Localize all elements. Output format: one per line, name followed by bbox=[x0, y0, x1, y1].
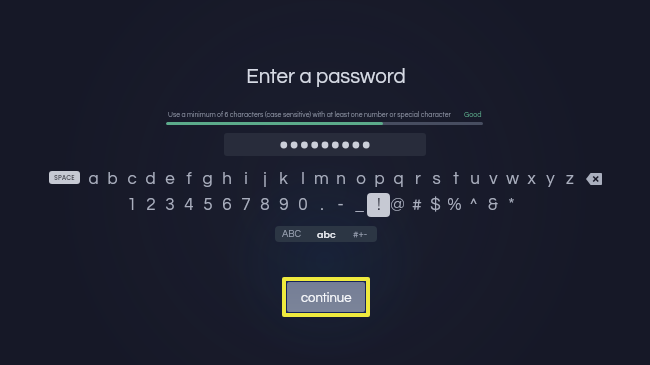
button[interactable]: i bbox=[234, 167, 257, 191]
button[interactable]: . bbox=[310, 193, 333, 217]
button[interactable]: b bbox=[101, 167, 124, 191]
button[interactable]: m bbox=[310, 167, 333, 191]
staticText: f bbox=[186, 170, 192, 188]
button[interactable]: - bbox=[329, 193, 352, 217]
button[interactable]: $ bbox=[424, 193, 447, 217]
button[interactable]: g bbox=[196, 167, 219, 191]
button[interactable]: SPACE bbox=[49, 171, 80, 184]
button[interactable]: n bbox=[329, 167, 352, 191]
button[interactable]: continue bbox=[282, 277, 370, 317]
button[interactable]: j bbox=[253, 167, 276, 191]
button[interactable]: 2 bbox=[139, 193, 162, 217]
button[interactable]: a bbox=[82, 167, 105, 191]
button[interactable]: s bbox=[425, 167, 448, 191]
staticText: - bbox=[337, 196, 344, 214]
button[interactable]: # bbox=[405, 193, 428, 217]
staticText: SPACE bbox=[54, 173, 75, 182]
button[interactable]: abc bbox=[309, 226, 343, 242]
staticText: 3 bbox=[165, 196, 175, 214]
button[interactable]: w bbox=[501, 167, 524, 191]
button[interactable]: q bbox=[387, 167, 410, 191]
staticText: k bbox=[279, 170, 288, 188]
button[interactable]: ! bbox=[367, 193, 390, 217]
button[interactable]: 8 bbox=[253, 193, 276, 217]
staticText: % bbox=[447, 196, 462, 214]
staticText: continue bbox=[301, 291, 352, 304]
button[interactable]: p bbox=[368, 167, 391, 191]
button[interactable]: o bbox=[349, 167, 372, 191]
staticText: u bbox=[470, 170, 480, 188]
staticText: Good bbox=[464, 111, 482, 118]
button[interactable]: #+- bbox=[343, 226, 377, 242]
button[interactable]: 0 bbox=[291, 193, 314, 217]
button[interactable]: 7 bbox=[234, 193, 257, 217]
staticText: l bbox=[301, 170, 305, 188]
staticText: x bbox=[527, 170, 536, 188]
staticText: ^ bbox=[469, 196, 478, 214]
staticText: & bbox=[488, 196, 498, 214]
staticText: i bbox=[244, 170, 248, 188]
staticText: m bbox=[314, 170, 329, 188]
staticText: . bbox=[320, 196, 324, 214]
staticText: t bbox=[453, 170, 459, 188]
button[interactable] bbox=[224, 133, 426, 156]
staticText: g bbox=[202, 170, 213, 188]
button[interactable]: 6 bbox=[215, 193, 238, 217]
staticText: #+- bbox=[353, 229, 368, 239]
button[interactable]: * bbox=[500, 193, 523, 217]
staticText: 9 bbox=[279, 196, 289, 214]
staticText: @ bbox=[390, 196, 405, 214]
staticText: ABC bbox=[282, 229, 302, 239]
staticText: d bbox=[145, 170, 156, 188]
staticText: c bbox=[127, 170, 137, 188]
staticText: v bbox=[489, 170, 498, 188]
button[interactable]: u bbox=[463, 167, 486, 191]
button[interactable]: % bbox=[443, 193, 466, 217]
staticText: ! bbox=[377, 196, 381, 214]
staticText: 1 bbox=[127, 196, 137, 214]
button[interactable]: e bbox=[158, 167, 181, 191]
staticText: b bbox=[107, 170, 118, 188]
button[interactable]: c bbox=[120, 167, 143, 191]
staticText: 5 bbox=[203, 196, 213, 214]
staticText: Use a minimum of 6 characters (case sens… bbox=[168, 111, 451, 118]
staticText: q bbox=[393, 170, 404, 188]
button[interactable]: ^ bbox=[462, 193, 485, 217]
button[interactable]: 5 bbox=[196, 193, 219, 217]
button[interactable]: t bbox=[444, 167, 467, 191]
button[interactable]: 9 bbox=[272, 193, 295, 217]
staticText: w bbox=[506, 170, 519, 188]
staticText: # bbox=[412, 196, 422, 214]
button[interactable]: z bbox=[558, 167, 581, 191]
staticText: 2 bbox=[146, 196, 156, 214]
button[interactable]: h bbox=[215, 167, 238, 191]
staticText: $ bbox=[430, 196, 441, 214]
staticText: abc bbox=[317, 228, 336, 241]
button[interactable]: _ bbox=[348, 193, 371, 217]
button[interactable]: x bbox=[520, 167, 543, 191]
button[interactable]: d bbox=[139, 167, 162, 191]
button[interactable]: l bbox=[291, 167, 314, 191]
button[interactable]: k bbox=[272, 167, 295, 191]
staticText: 4 bbox=[184, 196, 194, 214]
staticText: y bbox=[546, 170, 555, 188]
button[interactable]: & bbox=[481, 193, 504, 217]
staticText: p bbox=[374, 170, 385, 188]
staticText: 6 bbox=[222, 196, 232, 214]
button[interactable]: r bbox=[406, 167, 429, 191]
button[interactable]: 4 bbox=[177, 193, 200, 217]
staticText: j bbox=[263, 170, 267, 188]
staticText: h bbox=[222, 170, 232, 188]
button[interactable]: 3 bbox=[158, 193, 181, 217]
button[interactable]: Backspace bbox=[581, 167, 605, 191]
button[interactable]: @ bbox=[386, 193, 409, 217]
button[interactable]: f bbox=[177, 167, 200, 191]
button[interactable]: y bbox=[539, 167, 562, 191]
staticText: e bbox=[165, 170, 175, 188]
button[interactable]: 1 bbox=[120, 193, 143, 217]
staticText: Enter a password bbox=[246, 66, 406, 87]
button[interactable]: ABC bbox=[275, 226, 309, 242]
staticText: n bbox=[336, 170, 346, 188]
button[interactable]: v bbox=[482, 167, 505, 191]
staticText: r bbox=[415, 170, 421, 188]
